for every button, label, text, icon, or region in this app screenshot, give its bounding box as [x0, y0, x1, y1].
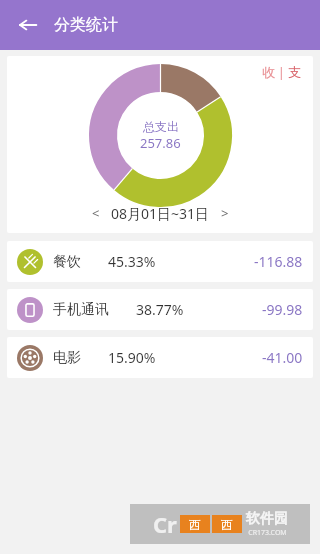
staticText: | — [275, 64, 288, 80]
staticText: 总支出 — [143, 119, 179, 134]
staticText: 257.86 — [140, 134, 181, 152]
staticText: 08月01日~31日 — [111, 204, 210, 223]
staticText: CR173.COM — [248, 528, 287, 538]
staticText: 手机通讯 — [53, 301, 109, 319]
staticText: 电影 — [53, 349, 81, 367]
staticText: 45.33% — [108, 252, 156, 271]
staticText: -116.88 — [254, 252, 303, 271]
staticText: -41.00 — [262, 348, 303, 367]
button[interactable]: Next — [214, 202, 236, 224]
staticText: > — [221, 204, 229, 222]
button[interactable]: 手机通讯 — [7, 289, 313, 330]
staticText: 支 — [288, 64, 301, 80]
staticText: 西 — [189, 517, 201, 532]
button[interactable]: 电影 — [7, 337, 313, 378]
button[interactable]: 餐饮 — [7, 241, 313, 282]
button[interactable]: 收 — [262, 64, 301, 80]
staticText: 分类统计 — [54, 15, 118, 35]
staticText: < — [92, 204, 100, 222]
staticText: 收 — [262, 64, 275, 80]
staticText: 餐饮 — [53, 253, 81, 271]
staticText: 西 — [221, 517, 233, 532]
staticText: -99.98 — [262, 300, 303, 319]
staticText: Cr — [153, 509, 177, 539]
button[interactable]: Previous — [85, 202, 107, 224]
staticText: 38.77% — [136, 300, 184, 319]
staticText: 软件园 — [246, 510, 288, 528]
staticText: 15.90% — [108, 348, 156, 367]
button[interactable]: Back — [10, 7, 46, 43]
